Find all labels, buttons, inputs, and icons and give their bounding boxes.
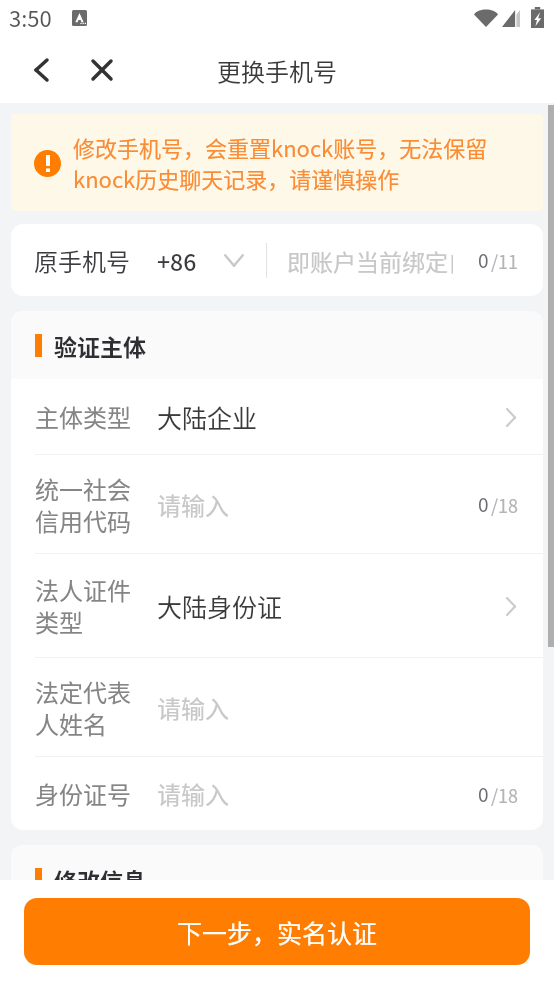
staticText: 3:50: [9, 1, 52, 33]
staticText: /18: [491, 492, 519, 518]
staticText: 请输入: [157, 776, 229, 811]
staticText: 请输入: [157, 487, 229, 522]
staticText: 法人证件 类型: [35, 572, 135, 639]
button[interactable]: 法定代表 人姓名: [11, 658, 543, 756]
staticText: 0: [478, 490, 489, 518]
staticText: 法定代表 人姓名: [35, 674, 135, 741]
staticText: /11: [491, 248, 519, 274]
button[interactable]: 统一社会 信用代码: [11, 455, 543, 553]
staticText: 身份证号: [35, 776, 135, 811]
button[interactable]: Back: [19, 47, 64, 92]
button[interactable]: 下一步，实名认证: [24, 898, 530, 965]
staticText: 统一社会 信用代码: [35, 471, 135, 538]
staticText: 大陆身份证: [157, 588, 283, 624]
button[interactable]: 主体类型: [11, 379, 543, 454]
staticText: +86: [157, 244, 197, 277]
staticText: 大陆企业: [157, 399, 258, 435]
staticText: 请输入: [157, 690, 229, 725]
button[interactable]: Close: [79, 47, 124, 92]
staticText: 主体类型: [35, 399, 135, 434]
button[interactable]: 法人证件 类型: [11, 554, 543, 657]
staticText: 原手机号: [34, 243, 130, 278]
staticText: 即账户当前绑定自: [287, 244, 453, 277]
staticText: 0: [478, 780, 489, 808]
staticText: 下一步，实名认证: [177, 914, 378, 950]
button[interactable]: 身份证号: [11, 757, 543, 830]
staticText: 0: [478, 246, 489, 274]
staticText: 更换手机号: [217, 53, 337, 88]
staticText: 修改信息: [54, 863, 146, 880]
staticText: 验证主体: [54, 329, 146, 362]
staticText: 修改手机号，会重置knock账号，无法保留knock历史聊天记录，请谨慎操作: [73, 131, 493, 194]
staticText: /18: [491, 782, 519, 808]
button[interactable]: +86: [130, 244, 266, 277]
